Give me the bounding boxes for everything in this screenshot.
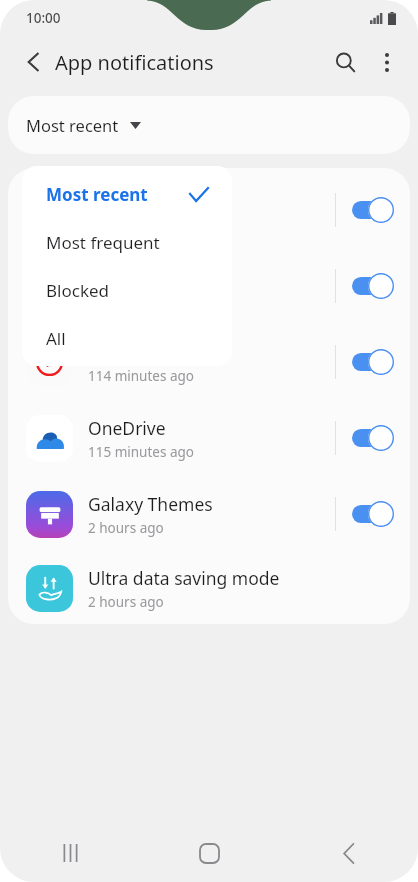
button[interactable]: More options	[366, 41, 408, 83]
button[interactable]: Toggle notifications for OneDrive	[336, 409, 410, 467]
staticText: Ultra data saving mode	[88, 566, 280, 590]
staticText: Most frequent	[46, 231, 160, 254]
button[interactable]: Back	[14, 43, 52, 81]
button[interactable]: Toggle notifications for Galaxy Store	[336, 257, 410, 315]
staticText: Samsung Notes	[88, 188, 218, 212]
staticText: All	[46, 327, 66, 350]
staticText: Most recent	[46, 183, 148, 206]
button[interactable]: Recents	[0, 824, 140, 882]
button[interactable]: YouTube Music	[8, 324, 410, 400]
button[interactable]: Most recent	[22, 170, 232, 218]
button[interactable]: Most recent	[8, 96, 410, 154]
button[interactable]: Toggle notifications for YouTube Music	[336, 333, 410, 391]
staticText: 114 minutes ago	[88, 367, 194, 385]
staticText: Most recent	[26, 114, 119, 136]
button[interactable]: All	[22, 314, 232, 362]
button[interactable]: Back	[279, 824, 418, 882]
staticText: Blocked	[46, 279, 110, 302]
staticText: 113 minutes ago	[88, 291, 194, 309]
staticText: Galaxy Themes	[88, 492, 213, 516]
button[interactable]: OneDrive	[8, 400, 410, 476]
staticText: 2 hours ago	[88, 593, 164, 611]
button[interactable]: Home	[140, 824, 279, 882]
staticText: 10:00	[26, 9, 61, 27]
staticText: Galaxy Store	[88, 264, 191, 288]
button[interactable]: Galaxy Store	[8, 248, 410, 324]
staticText: OneDrive	[88, 416, 166, 440]
button[interactable]: Search	[324, 41, 366, 83]
button[interactable]: Ultra data saving mode	[8, 552, 410, 624]
staticText: App notifications	[55, 49, 214, 76]
staticText: 2 hours ago	[88, 519, 164, 537]
button[interactable]: Toggle notifications for Galaxy Themes	[336, 485, 410, 543]
button[interactable]: Toggle notifications for Samsung Notes	[336, 181, 410, 239]
button[interactable]: Samsung Notes	[8, 172, 410, 248]
button[interactable]: Most frequent	[22, 218, 232, 266]
button[interactable]: Blocked	[22, 266, 232, 314]
button[interactable]: Galaxy Themes	[8, 476, 410, 552]
staticText: 115 minutes ago	[88, 443, 194, 461]
